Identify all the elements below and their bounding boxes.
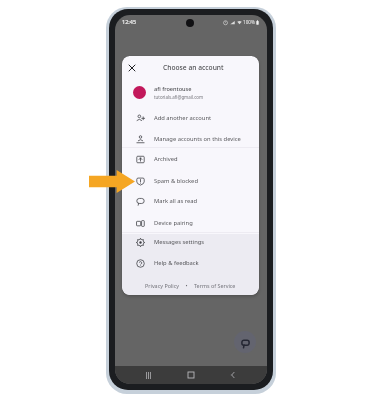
button[interactable]: Home bbox=[183, 367, 199, 383]
staticText: 100% bbox=[243, 19, 255, 25]
staticText: Help & feedback bbox=[154, 259, 199, 267]
button[interactable]: afi froentouse bbox=[122, 81, 259, 103]
staticText: tutorials.afi@gmail.com bbox=[154, 94, 203, 100]
staticText: Spam & blocked bbox=[154, 177, 198, 185]
button[interactable]: Mark all as read bbox=[122, 191, 259, 211]
staticText: • bbox=[180, 282, 194, 289]
button[interactable]: Back bbox=[225, 367, 241, 383]
button[interactable]: Messages settings bbox=[122, 232, 259, 252]
button[interactable]: Spam & blocked bbox=[122, 171, 259, 191]
staticText: afi froentouse bbox=[154, 85, 192, 93]
button[interactable]: Recents bbox=[140, 367, 156, 383]
button[interactable]: Help & feedback bbox=[122, 253, 259, 273]
button[interactable]: Manage accounts on this device bbox=[122, 129, 259, 149]
button[interactable]: Add another account bbox=[122, 108, 259, 128]
button[interactable]: Device pairing bbox=[122, 213, 259, 233]
staticText: Archived bbox=[154, 155, 178, 163]
staticText: Manage accounts on this device bbox=[154, 135, 241, 143]
staticText: Device pairing bbox=[154, 219, 193, 227]
staticText: Add another account bbox=[154, 114, 212, 122]
button[interactable]: Close bbox=[124, 60, 140, 76]
button[interactable]: Start chat bbox=[234, 331, 256, 353]
staticText: Messages settings bbox=[154, 238, 205, 246]
staticText: Choose an account bbox=[163, 63, 224, 72]
button[interactable]: Archived bbox=[122, 149, 259, 169]
staticText: Terms of Service bbox=[194, 282, 236, 289]
staticText: Privacy Policy bbox=[145, 282, 180, 289]
staticText: 12:45 bbox=[122, 18, 137, 25]
staticText: Mark all as read bbox=[154, 197, 198, 205]
